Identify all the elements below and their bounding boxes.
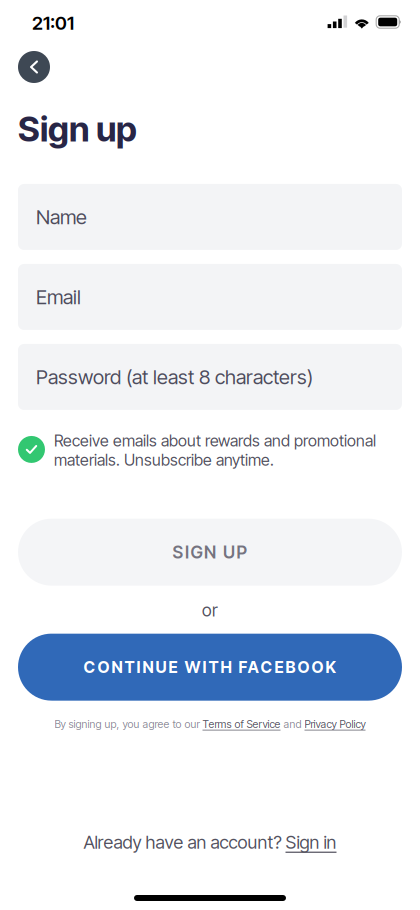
staticText: and bbox=[280, 718, 304, 730]
button[interactable]: Back bbox=[18, 51, 50, 83]
button[interactable]: CONTINUE WITH FACEBOOK bbox=[18, 634, 402, 701]
button[interactable]: Terms of Service bbox=[202, 718, 280, 730]
button[interactable]: Privacy Policy bbox=[304, 718, 365, 730]
staticText: CONTINUE WITH FACEBOOK bbox=[83, 657, 336, 677]
staticText: Sign in bbox=[285, 831, 336, 853]
button[interactable]: Already have an account? bbox=[0, 831, 420, 853]
staticText: 21:01 bbox=[32, 12, 74, 34]
staticText: Password (at least 8 characters) bbox=[36, 365, 313, 389]
staticText: Already have an account? bbox=[83, 831, 285, 853]
staticText: SIGN UP bbox=[172, 542, 247, 563]
staticText: or bbox=[202, 600, 218, 621]
button[interactable]: SIGN UP bbox=[18, 519, 402, 586]
staticText: Privacy Policy bbox=[304, 718, 365, 730]
staticText: Name bbox=[36, 205, 87, 229]
staticText: By signing up, you agree to our bbox=[54, 718, 202, 730]
staticText: Terms of Service bbox=[202, 718, 280, 730]
staticText: Email bbox=[36, 285, 81, 309]
staticText: Receive emails about rewards and promoti… bbox=[54, 431, 376, 470]
staticText: Sign up bbox=[18, 108, 137, 150]
